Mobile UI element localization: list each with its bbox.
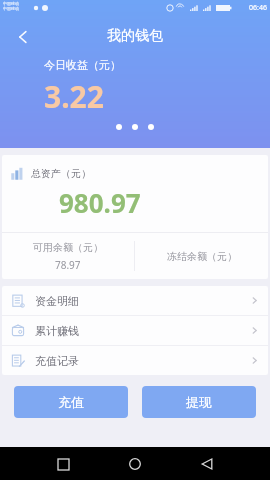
staticText: 总资产（元） bbox=[31, 167, 91, 180]
staticText: 中国移动 bbox=[3, 6, 19, 11]
button[interactable]: Recents bbox=[50, 451, 76, 477]
staticText: 冻结余额（元） bbox=[167, 250, 237, 263]
staticText: 980.97 bbox=[59, 185, 141, 220]
button[interactable]: Home bbox=[122, 451, 148, 477]
button[interactable]: Back bbox=[194, 451, 220, 477]
button[interactable]: 充值记录 bbox=[2, 346, 268, 375]
button[interactable]: 充值 bbox=[14, 386, 128, 418]
staticText: 充值记录 bbox=[35, 354, 79, 368]
button[interactable]: 可用余额（元） bbox=[2, 233, 134, 279]
staticText: 我的钱包 bbox=[107, 27, 163, 45]
button[interactable]: Back bbox=[6, 20, 40, 54]
staticText: 中国移动 bbox=[3, 1, 19, 6]
staticText: 充值 bbox=[58, 394, 84, 410]
staticText: 今日收益（元） bbox=[44, 58, 121, 72]
staticText: 提现 bbox=[186, 394, 212, 410]
staticText: 可用余额（元） bbox=[33, 241, 103, 254]
staticText: 累计赚钱 bbox=[35, 324, 79, 338]
staticText: 资金明细 bbox=[35, 294, 79, 308]
button[interactable]: 资金明细 bbox=[2, 286, 268, 315]
button[interactable]: 累计赚钱 bbox=[2, 316, 268, 345]
button[interactable]: 提现 bbox=[142, 386, 256, 418]
staticText: 3.22 bbox=[44, 76, 104, 117]
staticText: 78.97 bbox=[55, 258, 81, 272]
staticText: 06:46 bbox=[249, 3, 267, 13]
button[interactable]: 冻结余额（元） bbox=[135, 233, 268, 279]
